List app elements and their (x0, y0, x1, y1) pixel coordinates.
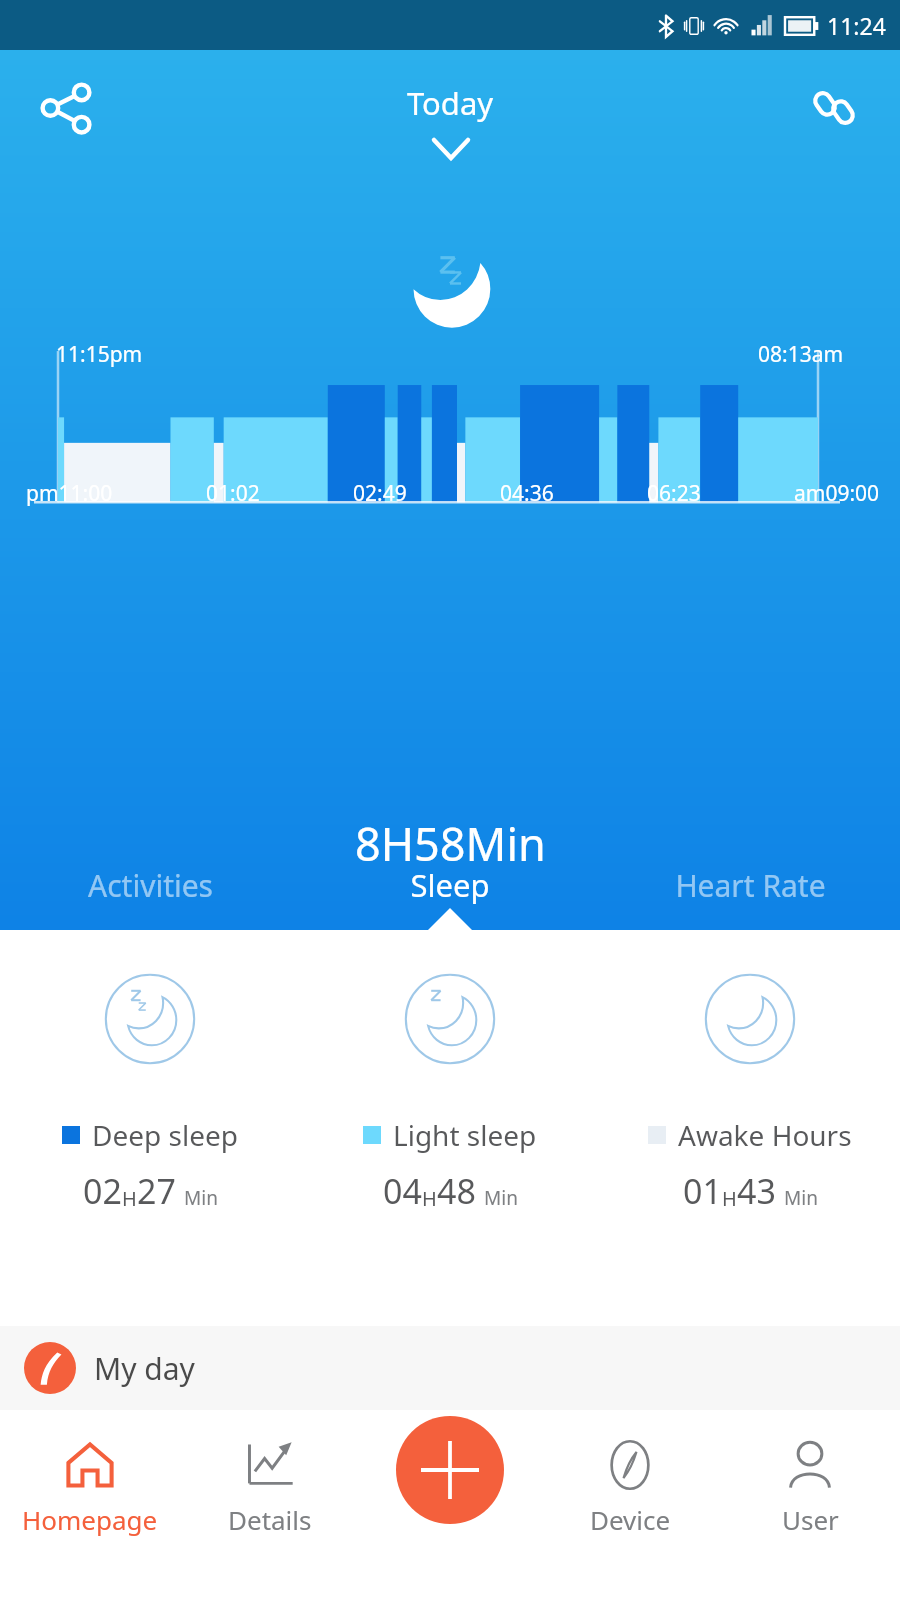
staticText: Min (784, 1185, 818, 1211)
staticText: H (422, 1185, 437, 1212)
staticText: Awake Hours (678, 1116, 852, 1154)
staticText: Homepage (22, 1502, 158, 1537)
button[interactable]: Awake Hours (600, 972, 900, 1214)
staticText: 01 (683, 1168, 722, 1214)
button[interactable]: Device (540, 1432, 720, 1543)
button[interactable]: Today (389, 78, 512, 128)
staticText: 27 (137, 1168, 176, 1214)
staticText: Details (228, 1502, 312, 1537)
button[interactable]: Sleep (300, 840, 600, 930)
button[interactable]: Homepage (0, 1432, 180, 1543)
button[interactable]: Add (396, 1416, 504, 1524)
staticText: 11:24 (827, 10, 886, 41)
staticText: User (782, 1502, 839, 1537)
staticText: 04:36 (500, 479, 554, 508)
staticText: Min (484, 1185, 518, 1211)
staticText: Device (590, 1502, 671, 1537)
staticText: Heart Rate (675, 865, 826, 906)
staticText: 06:23 (647, 479, 701, 508)
staticText: 48 (437, 1168, 476, 1214)
staticText: H (722, 1185, 737, 1212)
button[interactable]: My day (0, 1326, 900, 1410)
staticText: Min (184, 1185, 218, 1211)
staticText: Today (407, 82, 494, 124)
staticText: 02:49 (353, 479, 407, 508)
button[interactable]: Activities (0, 840, 300, 930)
staticText: 08:13am (758, 340, 844, 369)
button[interactable]: Link device (796, 70, 872, 146)
button[interactable]: Deep sleep (0, 972, 300, 1214)
staticText: H (122, 1185, 137, 1212)
staticText: 8H58Min (355, 813, 546, 874)
staticText: 04 (383, 1168, 422, 1214)
staticText: am09:00 (794, 479, 880, 508)
staticText: Activities (88, 865, 213, 906)
staticText: 43 (737, 1168, 776, 1214)
staticText: pm11:00 (26, 479, 113, 508)
staticText: My day (94, 1348, 195, 1389)
staticText: 02 (83, 1168, 122, 1214)
staticText: Light sleep (393, 1116, 537, 1154)
staticText: 01:02 (206, 479, 260, 508)
button[interactable]: User (720, 1432, 900, 1543)
staticText: 11:15pm (56, 340, 143, 369)
staticText: Deep sleep (92, 1116, 238, 1154)
button[interactable]: Light sleep (300, 972, 600, 1214)
button[interactable]: Change day (434, 140, 468, 158)
button[interactable]: Details (180, 1432, 360, 1543)
staticText: Sleep (410, 864, 490, 906)
button[interactable]: Heart Rate (600, 840, 900, 930)
button[interactable]: Share (28, 70, 104, 146)
